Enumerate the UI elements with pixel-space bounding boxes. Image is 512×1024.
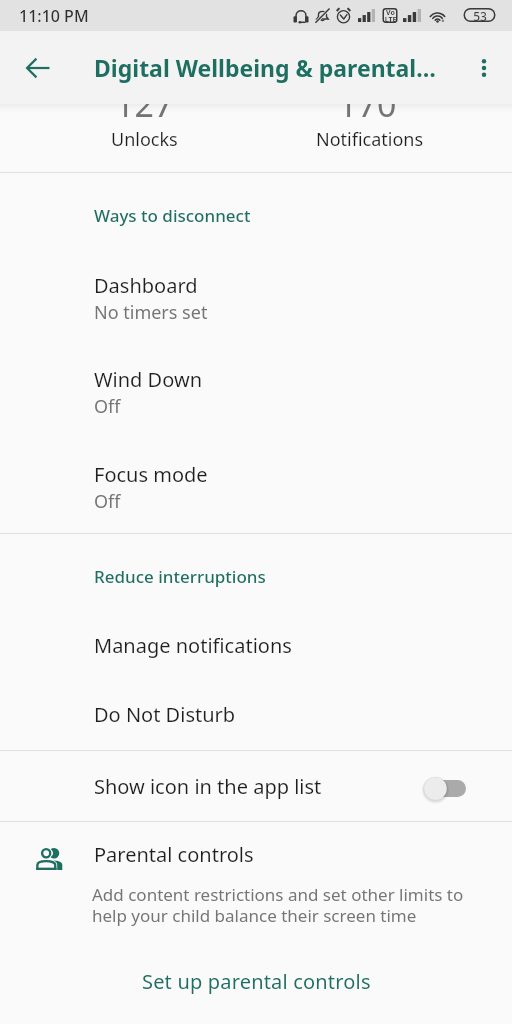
staticText: Vo [384,8,397,18]
staticText: Do Not Disturb [94,701,236,728]
staticText: Ways to disconnect [94,204,251,227]
staticText: Notifications [316,127,424,152]
staticText: Off [94,489,121,514]
button[interactable]: Manage notifications [0,621,512,669]
button[interactable]: Set up parental controls [0,959,512,1003]
button[interactable]: Dashboard [0,256,512,325]
staticText: Show icon in the app list [94,773,322,800]
button[interactable]: Wind Down [0,350,512,419]
button[interactable]: Focus mode [0,445,512,514]
staticText: 127 [115,81,174,127]
staticText: 11:10 PM [19,5,89,27]
staticText: Reduce interruptions [94,565,266,588]
staticText: Parental controls [94,841,254,868]
staticText: Unlocks [111,127,178,152]
staticText: 170 [338,81,397,127]
button[interactable]: Show icon in the app list [0,753,512,825]
staticText: 53 [471,8,489,24]
staticText: Wind Down [94,366,202,393]
staticText: Focus mode [94,461,208,488]
button[interactable]: Navigate up [10,40,65,95]
staticText: LTE [384,15,397,25]
button[interactable]: More options [456,40,511,95]
staticText: Manage notifications [94,632,292,659]
button[interactable]: Do Not Disturb [0,690,512,738]
staticText: Dashboard [94,272,198,299]
staticText: Off [94,394,121,419]
staticText: Add content restrictions and set other l… [92,883,464,927]
staticText: No timers set [94,300,208,325]
staticText: Digital Wellbeing & parental… [94,52,436,83]
staticText: Set up parental controls [142,968,371,995]
